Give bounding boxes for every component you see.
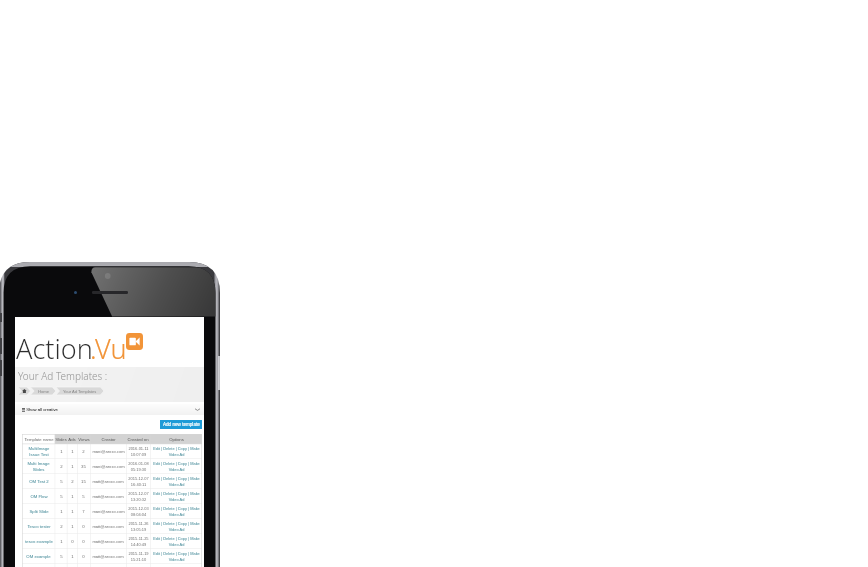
button[interactable]: 5	[77, 489, 90, 504]
button[interactable]: 2015-11-26 13:05:19	[126, 519, 150, 534]
button[interactable]: 2015-11-25 14:40:49	[126, 534, 150, 549]
button[interactable]: OM example	[22, 549, 55, 564]
button[interactable]: 0	[77, 534, 90, 549]
button[interactable]: 7	[77, 504, 90, 519]
button[interactable]: 5	[55, 489, 67, 504]
staticText: Multi Image Slides	[27, 461, 50, 472]
button[interactable]: 2016-01-11 10:07:09	[126, 444, 150, 459]
button[interactable]: matt@aroxo.com	[90, 549, 126, 564]
button[interactable]: 2015-12-07 13:20:32	[126, 489, 150, 504]
staticText: 2016-01-11 10:07:09	[128, 446, 149, 457]
button[interactable]: Multi Image Slides	[22, 459, 55, 474]
button[interactable]: 2	[55, 519, 67, 534]
button[interactable]: 1	[67, 549, 77, 564]
button[interactable]: 1	[67, 459, 77, 474]
button[interactable]: 1	[55, 444, 67, 459]
button[interactable]: matt@aroxo.com	[90, 489, 126, 504]
button[interactable]: Edit | Delete | Copy | Make Video Ad	[150, 549, 202, 564]
button[interactable]: 0	[77, 549, 90, 564]
button[interactable]: Edit | Delete | Copy | Make Video Ad	[150, 564, 202, 567]
button[interactable]: 5	[55, 549, 67, 564]
button[interactable]: 1	[67, 489, 77, 504]
button[interactable]: Edit | Delete | Copy | Make Video Ad	[150, 444, 202, 459]
button[interactable]: Creator	[90, 434, 126, 444]
staticText: 2	[60, 524, 63, 529]
staticText: 1	[60, 539, 63, 544]
button[interactable]: tesco example	[22, 534, 55, 549]
button[interactable]: Ads	[67, 434, 77, 444]
staticText: 2015-12-07 16:40:11	[128, 476, 149, 487]
staticText: Created on	[127, 437, 149, 442]
button[interactable]: Edit | Delete | Copy | Make Video Ad	[150, 504, 202, 519]
staticText: Options	[169, 437, 184, 442]
button[interactable]: 2	[67, 474, 77, 489]
button[interactable]: 1	[67, 444, 77, 459]
button[interactable]: MultiImage Issue Test	[22, 444, 55, 459]
button[interactable]: 1	[55, 504, 67, 519]
button[interactable]: Options	[150, 434, 202, 444]
button[interactable]: 1	[55, 534, 67, 549]
button[interactable]: Edit | Delete | Copy | Make Video Ad	[150, 489, 202, 504]
button[interactable]: 5	[55, 474, 67, 489]
button[interactable]: 1	[67, 504, 77, 519]
button[interactable]: 1	[67, 519, 77, 534]
staticText: 2	[82, 449, 85, 454]
button[interactable]: matt@aroxo.com	[90, 534, 126, 549]
staticText: Creator	[101, 437, 116, 442]
button[interactable]: Tesco tester	[22, 519, 55, 534]
staticText: 2015-11-25 14:40:49	[128, 536, 149, 547]
button[interactable]: Template name	[22, 434, 55, 444]
button[interactable]: OM Test 2	[22, 474, 55, 489]
staticText: 5	[60, 494, 63, 499]
button[interactable]: mani@aroxo.com	[90, 504, 126, 519]
button[interactable]: OM Flow	[22, 489, 55, 504]
button[interactable]: 2	[77, 444, 90, 459]
button[interactable]: Edit | Delete | Copy | Make Video Ad	[150, 474, 202, 489]
staticText: Edit | Delete | Copy | Make Video Ad	[153, 551, 200, 562]
staticText: Template name	[24, 437, 54, 442]
button[interactable]: 35	[77, 459, 90, 474]
staticText: matt@aroxo.com	[92, 524, 124, 529]
button[interactable]: matt@aroxo.com	[90, 519, 126, 534]
button[interactable]: 0	[67, 534, 77, 549]
button[interactable]: Test 4	[22, 564, 55, 567]
staticText: 0	[82, 539, 85, 544]
button[interactable]: 2016-01-08 05:19:30	[126, 459, 150, 474]
button[interactable]: mani@aroxo.com	[90, 459, 126, 474]
button[interactable]: Edit | Delete | Copy | Make Video Ad	[150, 519, 202, 534]
button[interactable]: mani@aroxo.com	[90, 444, 126, 459]
button[interactable]: Slides	[55, 434, 67, 444]
staticText: 2015-12-07 13:20:32	[128, 491, 149, 502]
button[interactable]: Split Slide	[22, 504, 55, 519]
button[interactable]: Edit | Delete | Copy | Make Video Ad	[150, 459, 202, 474]
button[interactable]: 0	[77, 519, 90, 534]
staticText: tesco example	[25, 539, 53, 544]
staticText: 2	[71, 479, 74, 484]
button[interactable]: 15	[77, 474, 90, 489]
button[interactable]: 2015-11-19 15:21:10	[126, 549, 150, 564]
button[interactable]: 2015-12-07 16:40:11	[126, 474, 150, 489]
staticText: 2015-11-19 15:21:10	[128, 551, 149, 562]
staticText: 1	[71, 509, 74, 514]
button[interactable]: Edit | Delete | Copy | Make Video Ad	[150, 534, 202, 549]
button[interactable]: matt@aroxo.com	[90, 474, 126, 489]
button[interactable]: 2015-12-03 08:04:04	[126, 504, 150, 519]
button[interactable]: Show all creative	[15, 404, 204, 415]
staticText: 0	[71, 539, 74, 544]
button[interactable]: Views	[77, 434, 90, 444]
button[interactable]: Created on	[126, 434, 150, 444]
staticText: 1	[71, 554, 74, 559]
staticText: Ads	[68, 437, 76, 442]
button[interactable]: Add new template	[160, 420, 202, 429]
staticText: 1	[71, 524, 74, 529]
staticText: Your Ad Templates :	[18, 369, 108, 383]
button[interactable]: 2	[55, 459, 67, 474]
staticText: 2016-01-08 05:19:30	[128, 461, 149, 472]
staticText: OM Test 2	[29, 479, 49, 484]
